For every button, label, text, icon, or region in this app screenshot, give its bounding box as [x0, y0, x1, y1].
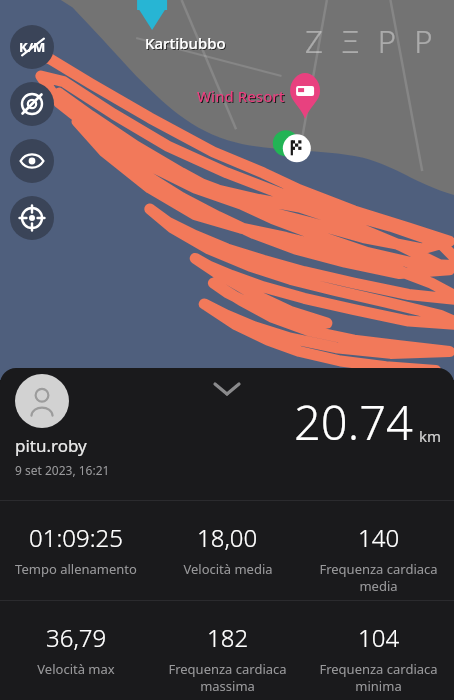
button[interactable]: Center on location	[10, 196, 54, 240]
staticText: Velocità max	[37, 660, 115, 678]
staticText: Tempo allenamento	[15, 560, 137, 578]
button[interactable]: Show route	[10, 139, 54, 183]
staticText: 18,00	[197, 521, 258, 554]
staticText: Frequenza cardiaca massima	[168, 660, 287, 695]
button[interactable]: 18,00	[152, 501, 303, 600]
button[interactable]: Units kilometers miles	[10, 25, 54, 69]
staticText: K/M	[19, 38, 46, 56]
staticText: 01:09:25	[29, 521, 123, 554]
button[interactable]: 140	[303, 501, 454, 600]
button[interactable]: 36,79	[0, 601, 152, 700]
staticText: 140	[358, 521, 400, 554]
staticText: 9 set 2023, 16:21	[15, 462, 110, 478]
staticText: 36,79	[46, 621, 107, 654]
button[interactable]: pitu.roby	[0, 368, 454, 500]
staticText: Z Ξ P P	[305, 20, 438, 62]
button[interactable]: 182	[152, 601, 303, 700]
staticText: Wind Resort	[198, 87, 286, 107]
button[interactable]: 104	[303, 601, 454, 700]
staticText: Kartibubbo	[146, 34, 227, 54]
button[interactable]: Toggle route style	[10, 82, 54, 126]
staticText: 20.74	[294, 390, 413, 454]
staticText: pitu.roby	[15, 434, 87, 457]
staticText: Velocità media	[183, 560, 273, 578]
button[interactable]: 01:09:25	[0, 501, 152, 600]
staticText: 104	[358, 621, 400, 654]
staticText: km	[419, 426, 442, 446]
staticText: Kartibubbo	[145, 33, 226, 53]
staticText: Frequenza cardiaca media	[319, 560, 438, 595]
staticText: Wind Resort	[197, 86, 285, 106]
staticText: Frequenza cardiaca minima	[319, 660, 438, 695]
staticText: 182	[207, 621, 249, 654]
